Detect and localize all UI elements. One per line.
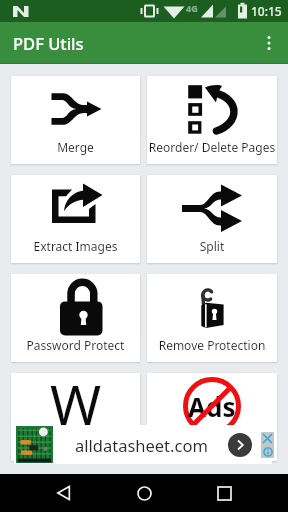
button[interactable]: alldatasheet.com — [14, 425, 272, 464]
staticText: W — [50, 373, 102, 432]
staticText: Extract Images — [11, 238, 140, 254]
staticText: Reorder/ Delete Pages — [147, 139, 277, 155]
button[interactable]: W — [11, 373, 140, 461]
staticText: Password Protect — [11, 337, 140, 353]
staticText: alldatasheet.com — [75, 434, 208, 456]
button[interactable]: Home — [122, 474, 166, 512]
button[interactable]: Back — [42, 474, 86, 512]
staticText: PDF Utils — [13, 32, 84, 54]
button[interactable]: Advertisement information — [261, 445, 274, 458]
staticText: Word to PDF — [11, 436, 140, 452]
staticText: Ads — [188, 389, 236, 424]
staticText: 4G — [186, 2, 198, 14]
button[interactable]: Open advertisement — [228, 433, 252, 457]
button[interactable]: Password Protect — [11, 274, 140, 362]
staticText: Remove Protection — [147, 337, 277, 353]
button[interactable]: Remove Protection — [147, 274, 277, 362]
staticText: Remove Ads — [147, 436, 277, 452]
staticText: Merge — [11, 139, 140, 155]
staticText: 10:15 — [251, 3, 282, 19]
button[interactable]: Close advertisement — [261, 432, 274, 445]
button[interactable]: Ads — [147, 373, 277, 461]
button[interactable]: Reorder/ Delete Pages — [147, 76, 277, 164]
button[interactable]: Merge — [11, 76, 140, 164]
staticText: Split — [147, 238, 277, 254]
button[interactable]: Recent apps — [202, 474, 246, 512]
button[interactable]: Extract Images — [11, 175, 140, 263]
button[interactable]: More options — [250, 22, 288, 64]
button[interactable]: Split — [147, 175, 277, 263]
